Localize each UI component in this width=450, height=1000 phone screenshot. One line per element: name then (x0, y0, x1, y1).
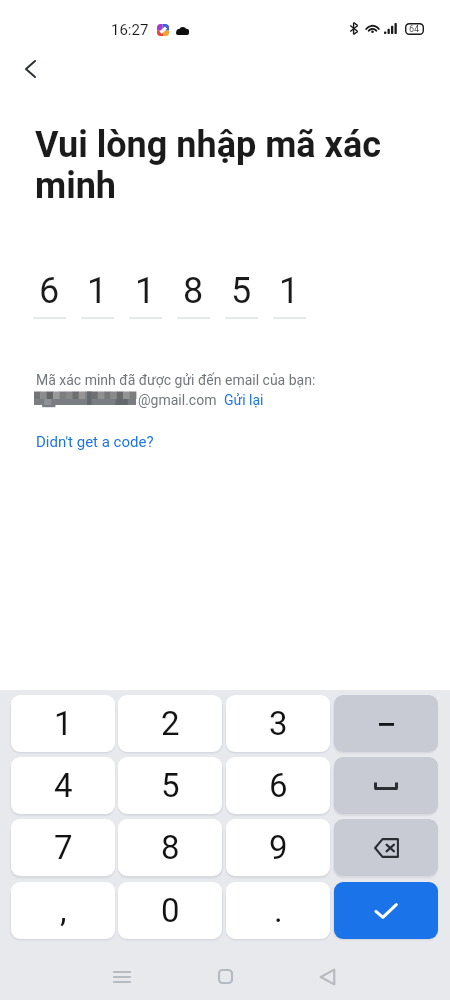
staticText: 1 (135, 270, 156, 312)
staticText: 9 (269, 828, 288, 867)
button[interactable]: Didn't get a code? (36, 433, 154, 451)
staticText: 1 (87, 270, 108, 312)
staticText: 8 (161, 828, 180, 867)
button[interactable]: Space (334, 757, 438, 814)
staticText: 1 (54, 704, 73, 743)
button[interactable]: 6 (226, 757, 330, 814)
staticText: Mã xác minh đã được gửi đến email của bạ… (36, 372, 316, 388)
button[interactable]: 2 (118, 695, 222, 752)
staticText: @gmail.com (138, 392, 217, 408)
staticText: Vui lòng nhập mã xác minh (35, 124, 395, 206)
button[interactable]: Gửi lại (224, 392, 264, 408)
staticText: 64 (409, 24, 420, 35)
button[interactable]: Back (8, 47, 52, 91)
button[interactable]: Backspace (334, 819, 438, 876)
button[interactable]: 1 (129, 270, 162, 319)
staticText: 3 (269, 704, 288, 743)
staticText: 4 (54, 766, 73, 805)
staticText: 5 (231, 270, 252, 312)
button[interactable]: Home (200, 953, 250, 1000)
staticText: 6 (269, 766, 288, 805)
staticText: , (60, 891, 67, 930)
button[interactable]: , (11, 882, 115, 939)
staticText: 1 (279, 270, 300, 312)
button[interactable]: 6 (33, 270, 66, 319)
staticText: 8 (183, 270, 204, 312)
button[interactable]: Back (302, 953, 352, 1000)
button[interactable]: 1 (11, 695, 115, 752)
staticText: 7 (54, 828, 73, 867)
button[interactable]: 8 (177, 270, 210, 319)
button[interactable]: 3 (226, 695, 330, 752)
staticText: 2 (161, 704, 180, 743)
button[interactable]: 0 (118, 882, 222, 939)
staticText: 6 (39, 270, 60, 312)
button[interactable]: . (226, 882, 330, 939)
staticText: Didn't get a code? (36, 433, 154, 451)
button[interactable]: 5 (118, 757, 222, 814)
button[interactable]: 9 (226, 819, 330, 876)
button[interactable]: 1 (273, 270, 306, 319)
button[interactable]: Recent apps (97, 953, 147, 1000)
button[interactable]: 5 (225, 270, 258, 319)
button[interactable]: 8 (118, 819, 222, 876)
button[interactable]: 1 (81, 270, 114, 319)
staticText: Gửi lại (224, 392, 264, 408)
staticText: 5 (161, 766, 180, 805)
button[interactable]: Done (334, 882, 438, 939)
staticText: 0 (161, 891, 180, 930)
staticText: 16:27 (111, 21, 149, 39)
button[interactable]: Minus (334, 695, 438, 752)
staticText: . (274, 891, 283, 930)
button[interactable]: 7 (11, 819, 115, 876)
button[interactable]: 4 (11, 757, 115, 814)
